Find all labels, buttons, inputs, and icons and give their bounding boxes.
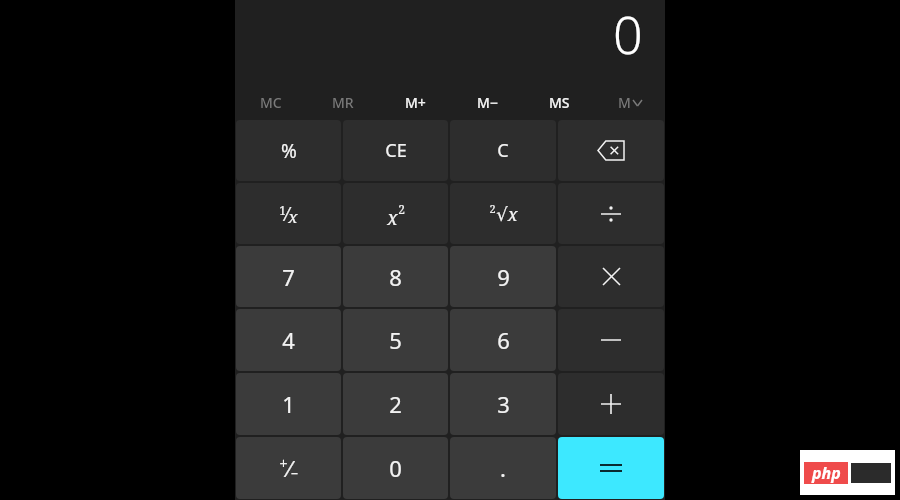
- staticText: M−: [477, 93, 498, 112]
- button[interactable]: 7: [236, 246, 341, 307]
- staticText: x: [288, 205, 298, 228]
- button[interactable]: MR: [307, 87, 379, 117]
- staticText: –: [291, 463, 298, 482]
- button[interactable]: 2: [343, 373, 448, 435]
- button[interactable]: 4: [236, 309, 341, 371]
- staticText: MR: [332, 93, 354, 112]
- staticText: 1: [282, 389, 295, 419]
- staticText: 5: [389, 325, 402, 355]
- button[interactable]: %: [236, 120, 341, 181]
- staticText: 0: [613, 0, 643, 69]
- button[interactable]: 0: [343, 437, 448, 499]
- button[interactable]: Equals: [558, 437, 664, 499]
- staticText: 2: [398, 201, 405, 217]
- button[interactable]: Subtract: [558, 309, 664, 371]
- staticText: 2: [389, 389, 402, 419]
- staticText: 0: [389, 453, 402, 483]
- staticText: 6: [497, 325, 510, 355]
- staticText: CE: [385, 138, 407, 163]
- staticText: 7: [282, 262, 295, 292]
- button[interactable]: Add: [558, 373, 664, 435]
- button[interactable]: Multiply: [558, 246, 664, 307]
- staticText: 2: [489, 201, 496, 216]
- button[interactable]: M+: [379, 87, 451, 117]
- staticText: MS: [549, 93, 570, 112]
- staticText: php: [812, 462, 841, 484]
- button[interactable]: Square root: [450, 183, 556, 244]
- staticText: MC: [260, 93, 282, 112]
- button[interactable]: 3: [450, 373, 556, 435]
- staticText: +: [279, 454, 288, 473]
- staticText: M: [618, 93, 631, 112]
- staticText: x: [387, 205, 398, 231]
- staticText: √x: [496, 202, 518, 227]
- button[interactable]: M−: [451, 87, 523, 117]
- button[interactable]: Reciprocal: [236, 183, 341, 244]
- staticText: 8: [389, 262, 402, 292]
- button[interactable]: Divide: [558, 183, 664, 244]
- button[interactable]: 1: [236, 373, 341, 435]
- staticText: .: [500, 453, 506, 483]
- staticText: ⁄: [286, 200, 288, 227]
- button[interactable]: CE: [343, 120, 448, 181]
- button[interactable]: Squared: [343, 183, 448, 244]
- staticText: 4: [282, 325, 295, 355]
- staticText: C: [497, 138, 509, 163]
- button[interactable]: Decimal point: [450, 437, 556, 499]
- staticText: M+: [405, 93, 426, 112]
- button[interactable]: 6: [450, 309, 556, 371]
- button[interactable]: 9: [450, 246, 556, 307]
- button[interactable]: M: [595, 87, 665, 117]
- button[interactable]: C: [450, 120, 556, 181]
- button[interactable]: 5: [343, 309, 448, 371]
- staticText: ⁄: [288, 453, 291, 483]
- button[interactable]: MC: [235, 87, 307, 117]
- staticText: 9: [497, 262, 510, 292]
- staticText: 3: [497, 389, 510, 419]
- button[interactable]: Plus minus: [236, 437, 341, 499]
- button[interactable]: Backspace: [558, 120, 664, 181]
- button[interactable]: 8: [343, 246, 448, 307]
- staticText: %: [281, 138, 297, 164]
- staticText: 1: [279, 202, 286, 218]
- button[interactable]: MS: [523, 87, 595, 117]
